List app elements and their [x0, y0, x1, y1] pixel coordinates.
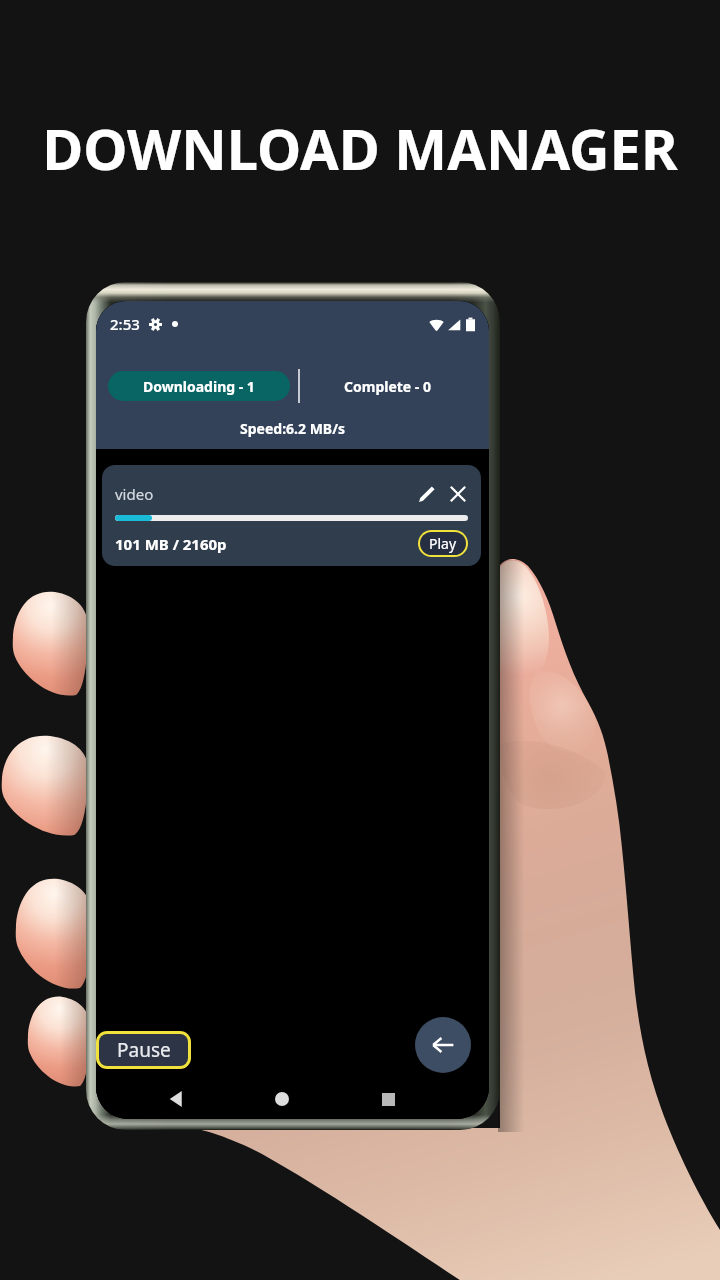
button[interactable]: Complete - 0 — [300, 367, 475, 405]
button[interactable]: Back — [156, 1079, 196, 1119]
staticText: Downloading - 1 — [143, 377, 255, 396]
button[interactable]: Pause — [96, 1031, 191, 1069]
staticText: Play — [429, 534, 457, 553]
button[interactable]: Cancel — [448, 484, 468, 504]
button[interactable]: Recents — [368, 1079, 408, 1119]
staticText: 101 MB / 2160p — [115, 534, 227, 554]
staticText: Speed:6.2 MB/s — [240, 419, 345, 438]
staticText: 2:53 — [110, 314, 140, 334]
button[interactable]: Downloading - 1 — [108, 371, 290, 401]
button[interactable]: video — [102, 465, 481, 566]
button[interactable]: Back — [415, 1017, 471, 1073]
staticText: Complete - 0 — [344, 377, 431, 396]
button[interactable]: Play — [418, 530, 468, 557]
button[interactable]: Edit — [417, 484, 437, 504]
staticText: video — [115, 484, 154, 504]
button[interactable]: Home — [262, 1079, 302, 1119]
staticText: DOWNLOAD MANAGER — [0, 110, 720, 186]
staticText: Pause — [117, 1037, 171, 1063]
